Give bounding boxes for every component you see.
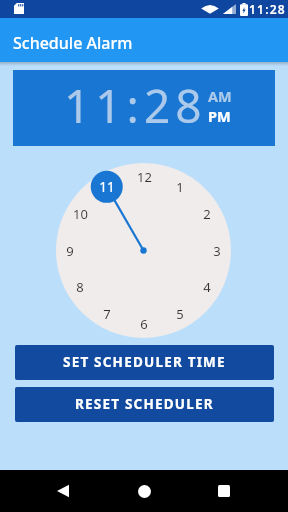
staticText: 8	[76, 278, 84, 296]
staticText: 9	[66, 242, 74, 260]
button[interactable]: AM	[208, 86, 232, 106]
button[interactable]	[194, 470, 254, 512]
staticText: 2	[203, 205, 211, 223]
button[interactable]: RESET SCHEDULER	[15, 387, 274, 422]
button[interactable]: SET SCHEDULER TIME	[15, 345, 274, 380]
staticText: 6	[140, 315, 148, 333]
button[interactable]: PM	[208, 106, 231, 126]
staticText: 10	[73, 205, 88, 223]
staticText: 11	[99, 178, 115, 196]
staticText: Schedule Alarm	[13, 32, 133, 54]
staticText: RESET SCHEDULER	[75, 395, 214, 413]
staticText: 3	[213, 242, 221, 260]
staticText: 5	[176, 305, 184, 323]
staticText: 4	[203, 278, 211, 296]
staticText: 7	[103, 305, 111, 323]
staticText: 11:28	[64, 74, 207, 137]
button[interactable]	[33, 470, 93, 512]
staticText: 1	[176, 178, 184, 196]
button[interactable]	[114, 470, 174, 512]
staticText: 11:28	[249, 1, 286, 17]
staticText: 12	[137, 168, 152, 186]
staticText: SET SCHEDULER TIME	[63, 353, 226, 371]
